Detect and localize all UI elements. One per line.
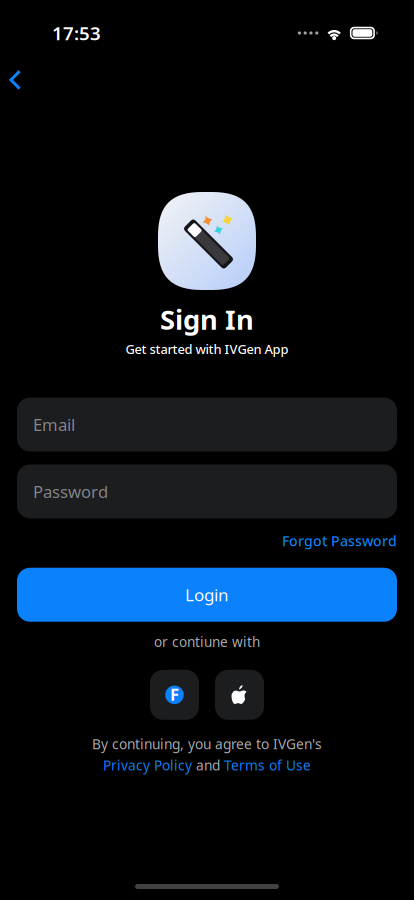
staticText: Forgot Password	[282, 531, 397, 550]
button[interactable]: Privacy Policy	[103, 756, 192, 774]
staticText: Terms of Use	[224, 756, 311, 774]
staticText: By continuing, you agree to IVGen's	[92, 735, 322, 753]
staticText: Password	[33, 480, 108, 502]
staticText: and	[196, 756, 220, 774]
button[interactable]: Forgot Password	[282, 531, 397, 550]
staticText: F	[170, 683, 179, 705]
button[interactable]: Continue with Facebook	[150, 670, 199, 720]
staticText: or contiune with	[154, 633, 260, 651]
staticText: Privacy Policy	[103, 756, 192, 774]
button[interactable]: Terms of Use	[224, 756, 311, 774]
staticText: Email	[33, 413, 75, 435]
button[interactable]: Login	[17, 568, 397, 622]
staticText: Get started with IVGen App	[125, 340, 288, 357]
button[interactable]: Back	[0, 65, 37, 108]
button[interactable]: Continue with Apple	[215, 670, 264, 720]
staticText: Login	[185, 583, 229, 606]
staticText: 17:53	[52, 21, 101, 45]
staticText: Sign In	[160, 301, 254, 337]
